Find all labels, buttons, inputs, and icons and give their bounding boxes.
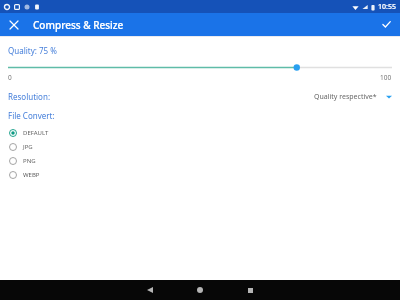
button[interactable]: PNG xyxy=(0,154,400,168)
staticText: Compress & Resize xyxy=(33,18,124,32)
button[interactable]: JPG xyxy=(0,140,400,154)
button[interactable]: Home xyxy=(186,280,214,300)
staticText: JPG xyxy=(23,143,33,151)
staticText: Resolution: xyxy=(8,91,51,102)
button[interactable]: Recents xyxy=(236,280,264,300)
staticText: WEBP xyxy=(23,171,40,179)
staticText: DEFAULT xyxy=(23,129,49,137)
staticText: 100 xyxy=(380,73,392,82)
button[interactable]: Confirm xyxy=(378,16,395,33)
button[interactable]: Resolution: xyxy=(0,90,400,103)
staticText: File Convert: xyxy=(8,110,55,121)
staticText: Quality respective* xyxy=(314,92,377,102)
button[interactable]: Close xyxy=(5,16,22,33)
button[interactable]: DEFAULT xyxy=(0,126,400,140)
staticText: Quality: 75 % xyxy=(8,45,57,56)
button[interactable] xyxy=(0,63,400,72)
button[interactable]: Back xyxy=(136,280,164,300)
staticText: 0 xyxy=(8,73,12,82)
button[interactable]: WEBP xyxy=(0,168,400,182)
staticText: PNG xyxy=(23,157,36,165)
staticText: 10:55 xyxy=(378,2,396,12)
